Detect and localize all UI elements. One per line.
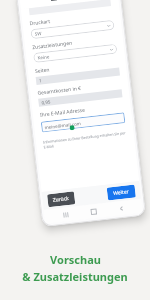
staticText: Ihre E-Mail Adresse <box>40 106 86 119</box>
button[interactable]: Weiter <box>107 184 136 201</box>
staticText: Keine <box>37 53 50 61</box>
staticText: meine@mail.com <box>44 120 81 130</box>
button[interactable]: Zurück <box>47 191 75 207</box>
button[interactable]: meine@mail.com <box>41 112 125 133</box>
staticText: Zusatzleistungen <box>32 39 73 51</box>
other: BriefKlick logo <box>51 0 57 2</box>
button[interactable]: Back <box>113 200 129 216</box>
staticText: Weiter <box>113 188 130 197</box>
staticText: & Zusatzleistungen <box>22 269 128 284</box>
button[interactable]: SW <box>30 20 115 39</box>
staticText: Gesamtkosten in € <box>37 85 82 97</box>
button[interactable]: Keine <box>33 44 117 63</box>
staticText: Vorschau <box>50 252 101 267</box>
staticText: 0,95 <box>41 98 51 105</box>
button[interactable]: Home <box>85 204 101 219</box>
staticText: Druckart <box>29 18 51 27</box>
staticText: Informationen zu Ihrer Bestellung erhalt… <box>43 130 127 149</box>
staticText: Zurück <box>52 195 70 204</box>
staticText: 1 <box>39 77 42 84</box>
staticText: Seiten <box>35 66 50 75</box>
button[interactable]: Recents <box>58 207 73 222</box>
staticText: SW <box>34 30 42 37</box>
